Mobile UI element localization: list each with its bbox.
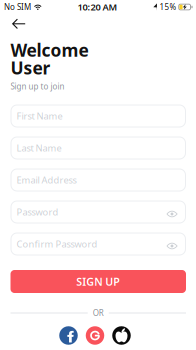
button[interactable]: Continue with Facebook (59, 326, 78, 345)
button[interactable]: Continue with Google (86, 326, 104, 345)
staticText: 15% (159, 2, 176, 12)
button[interactable]: Back (5, 14, 33, 34)
staticText: OR (93, 308, 104, 318)
staticText: Last Name (16, 142, 61, 154)
button[interactable]: Continue with Apple (112, 326, 131, 345)
staticText: Email Address (16, 174, 76, 186)
staticText: 10:20 AM (78, 1, 118, 13)
staticText: First Name (16, 110, 62, 122)
staticText: Sign up to join (10, 81, 64, 92)
staticText: Password (16, 206, 58, 218)
staticText: SIGN UP (76, 274, 120, 289)
staticText: Confirm Password (16, 238, 97, 250)
staticText: User (10, 56, 50, 79)
staticText: Welcome (10, 38, 88, 61)
button[interactable]: SIGN UP (10, 270, 186, 293)
staticText: No SIM (4, 2, 31, 12)
